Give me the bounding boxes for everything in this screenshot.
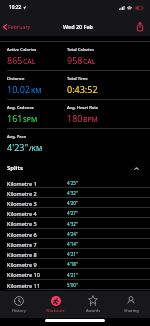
staticText: 865 [7, 54, 23, 66]
staticText: February [8, 23, 31, 30]
staticText: 0:43:52 [67, 83, 98, 95]
staticText: Awards [86, 308, 101, 313]
staticText: 4'25" [67, 180, 150, 186]
staticText: History [12, 308, 26, 313]
button[interactable]: Kilometre 5 [0, 218, 150, 229]
button[interactable]: February [0, 21, 34, 32]
staticText: SPM [23, 115, 38, 124]
staticText: Kilometre 8 [7, 251, 37, 258]
staticText: Avg. Heart Rate [67, 105, 99, 111]
staticText: Kilometre 10 [7, 271, 40, 278]
staticText: Kilometre 11 [7, 282, 40, 289]
staticText: /KM [29, 144, 43, 153]
button[interactable]: Kilometre 2 [0, 188, 150, 198]
staticText: 5'00" [67, 282, 150, 288]
staticText: Kilometre 7 [7, 241, 37, 248]
staticText: Distance [7, 76, 25, 82]
staticText: Workouts [46, 308, 65, 313]
button[interactable]: Kilometre 4 [0, 208, 150, 218]
button[interactable]: History [0, 291, 37, 318]
button[interactable]: Sharing [112, 291, 150, 318]
button[interactable]: Splits [0, 158, 150, 178]
staticText: Kilometre 4 [7, 210, 37, 217]
button[interactable]: Kilometre 1 [0, 178, 150, 188]
staticText: Sharing [124, 308, 139, 313]
staticText: Avg. Cadence [7, 105, 34, 111]
button[interactable]: Awards [74, 291, 112, 318]
staticText: 4'32" [67, 190, 150, 196]
staticText: Kilometre 3 [7, 200, 37, 207]
staticText: Wed 20 Feb [63, 23, 93, 30]
staticText: 4'21" [67, 251, 150, 257]
button[interactable]: Kilometre 10 [0, 269, 150, 280]
staticText: 4'21" [67, 272, 150, 278]
staticText: Kilometre 2 [7, 190, 37, 197]
button[interactable]: Kilometre 8 [0, 249, 150, 259]
button[interactable]: Kilometre 7 [0, 239, 150, 249]
staticText: 4'18" [67, 261, 150, 267]
staticText: Avg. Pace [7, 134, 27, 140]
staticText: 4'20" [67, 200, 150, 206]
staticText: Splits [7, 164, 23, 172]
staticText: Kilometre 6 [7, 231, 37, 238]
staticText: Kilometre 1 [7, 180, 37, 187]
staticText: 958 [67, 54, 83, 66]
staticText: 4'24" [67, 231, 150, 237]
staticText: 180 [67, 112, 83, 124]
button[interactable]: Kilometre 3 [0, 198, 150, 208]
staticText: Active Calories [7, 47, 37, 53]
staticText: 161 [7, 112, 23, 124]
staticText: 4'23" [7, 141, 29, 153]
button[interactable]: Kilometre 9 [0, 259, 150, 269]
staticText: Kilometre 9 [7, 261, 37, 268]
staticText: Total Time [67, 76, 88, 82]
staticText: 4'32" [67, 221, 150, 227]
button[interactable]: Kilometre 11 [0, 280, 150, 290]
staticText: CAL [23, 57, 36, 66]
staticText: KM [31, 86, 42, 95]
button[interactable]: Kilometre 6 [0, 229, 150, 239]
staticText: 4'14" [67, 241, 150, 247]
staticText: 4'27" [67, 210, 150, 216]
staticText: Kilometre 5 [7, 220, 37, 227]
staticText: 10:22 [9, 4, 22, 11]
button[interactable]: Workouts [37, 291, 74, 318]
staticText: CAL [83, 57, 96, 66]
staticText: 10.02 [7, 83, 31, 95]
staticText: BPM [83, 115, 98, 124]
staticText: Total Calories [67, 47, 94, 53]
button[interactable]: Share [133, 19, 147, 33]
